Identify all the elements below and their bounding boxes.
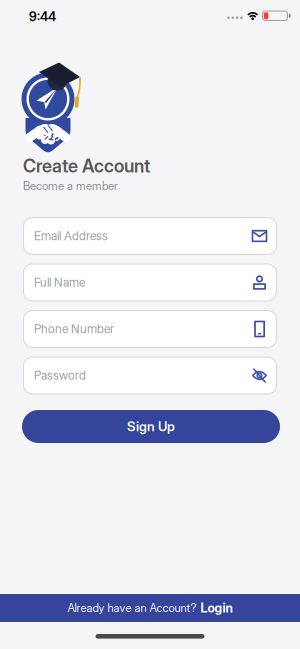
staticText: Become a member [23, 179, 118, 193]
staticText: 9:44 [29, 9, 56, 24]
staticText: Phone Number [34, 322, 114, 336]
staticText: Create Account [23, 155, 150, 177]
staticText: Sign Up [127, 418, 175, 434]
staticText: Password [34, 368, 86, 383]
staticText: Email Address [34, 229, 108, 243]
staticText: Already have an Account? [67, 601, 196, 615]
staticText: Login [200, 600, 232, 616]
staticText: Full Name [34, 275, 85, 290]
